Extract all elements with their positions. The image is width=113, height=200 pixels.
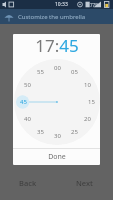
button[interactable]: 10 [80,78,94,92]
staticText: 50 [24,81,31,89]
staticText: 77% [90,2,99,8]
staticText: 25 [71,128,78,136]
button[interactable]: 45 [16,95,30,109]
button[interactable]: Done [13,149,100,165]
staticText: 00 [54,64,61,72]
staticText: Done [48,152,66,162]
staticText: 17:45 [35,34,79,56]
button[interactable]: 25 [67,125,81,139]
staticText: 55 [37,68,44,76]
other: App icon [3,11,15,23]
staticText: 10:33 [55,1,68,8]
staticText: Next [76,178,93,188]
button[interactable]: 50 [20,78,34,92]
staticText: Back [19,178,37,188]
button[interactable]: 30 [50,129,64,143]
staticText: 20 [84,115,91,123]
staticText: 40 [24,115,31,123]
button[interactable]: 05 [67,65,81,79]
staticText: 15 [88,98,95,106]
button[interactable]: 15 [84,95,98,109]
button[interactable]: 20 [80,112,94,126]
staticText: 35 [37,128,44,136]
button[interactable]: Back [0,166,56,200]
button[interactable]: 55 [33,65,47,79]
button[interactable]: 40 [20,112,34,126]
staticText: 05 [71,68,78,76]
staticText: 30 [54,132,61,140]
staticText: Customize the umbrella [18,13,86,21]
staticText: 10 [84,81,91,89]
button[interactable]: Next [56,166,113,200]
staticText: 45 [20,98,27,106]
button[interactable]: 35 [33,125,47,139]
button[interactable]: 00 [50,61,64,75]
